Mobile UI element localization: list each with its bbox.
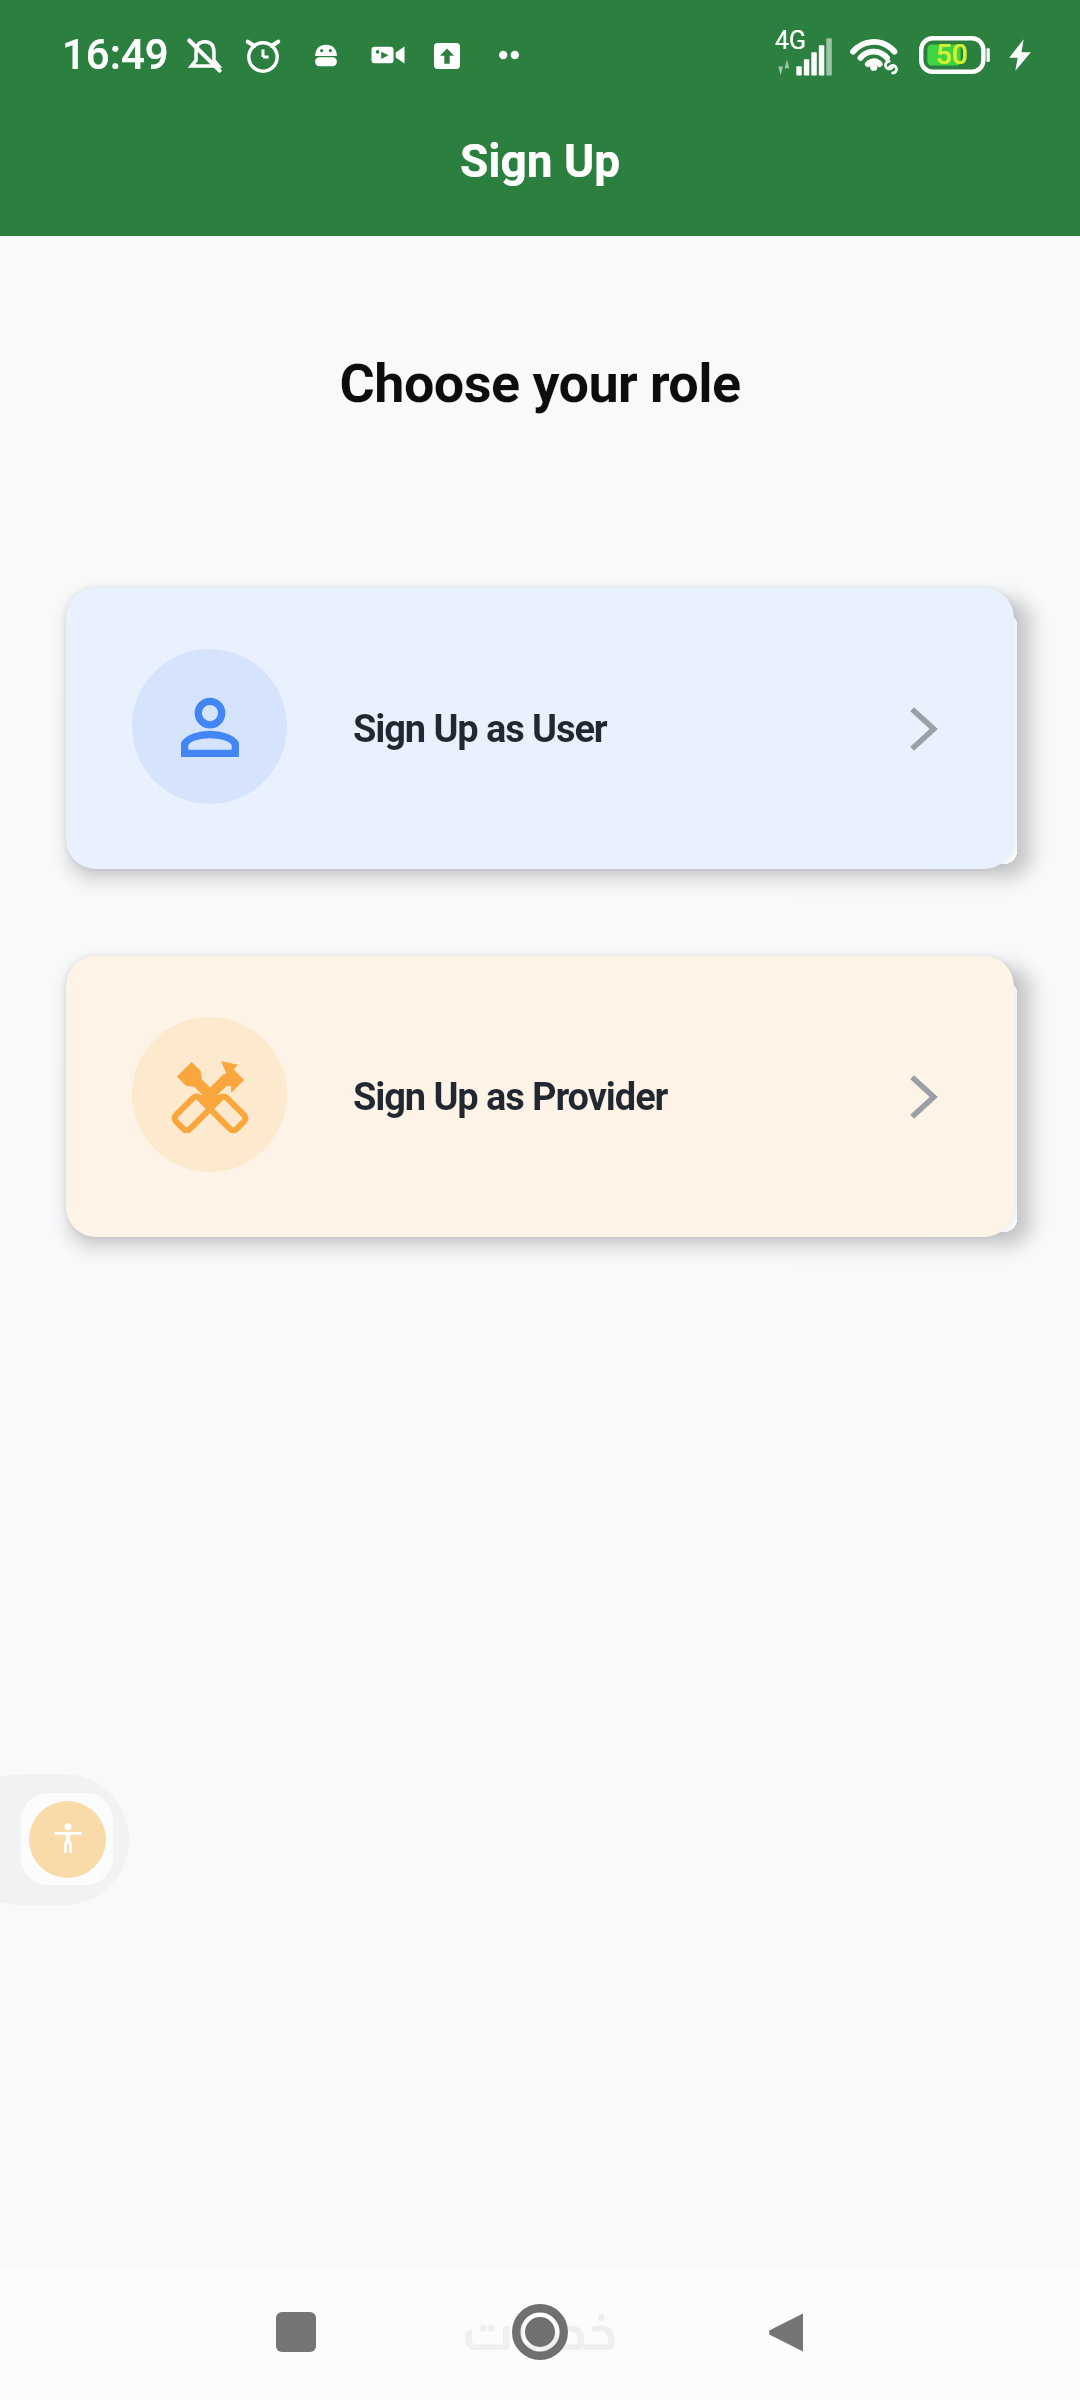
button[interactable]: Sign Up as Provider <box>66 956 1014 1237</box>
staticText: 16:49 <box>62 30 169 79</box>
staticText: Sign Up as Provider <box>353 1075 668 1120</box>
button[interactable]: Home <box>480 2282 600 2382</box>
button[interactable]: Recents <box>236 2282 356 2382</box>
staticText: 4G <box>775 26 807 55</box>
button[interactable]: Back <box>724 2282 844 2382</box>
staticText: Sign Up <box>0 134 1080 188</box>
staticText: خدمات <box>462 2303 618 2361</box>
button[interactable]: Accessibility menu <box>0 1774 129 1905</box>
staticText: Choose your role <box>0 352 1080 415</box>
staticText: 50 <box>936 38 968 71</box>
staticText: Sign Up as User <box>353 707 607 752</box>
button[interactable]: Sign Up as User <box>66 588 1014 869</box>
